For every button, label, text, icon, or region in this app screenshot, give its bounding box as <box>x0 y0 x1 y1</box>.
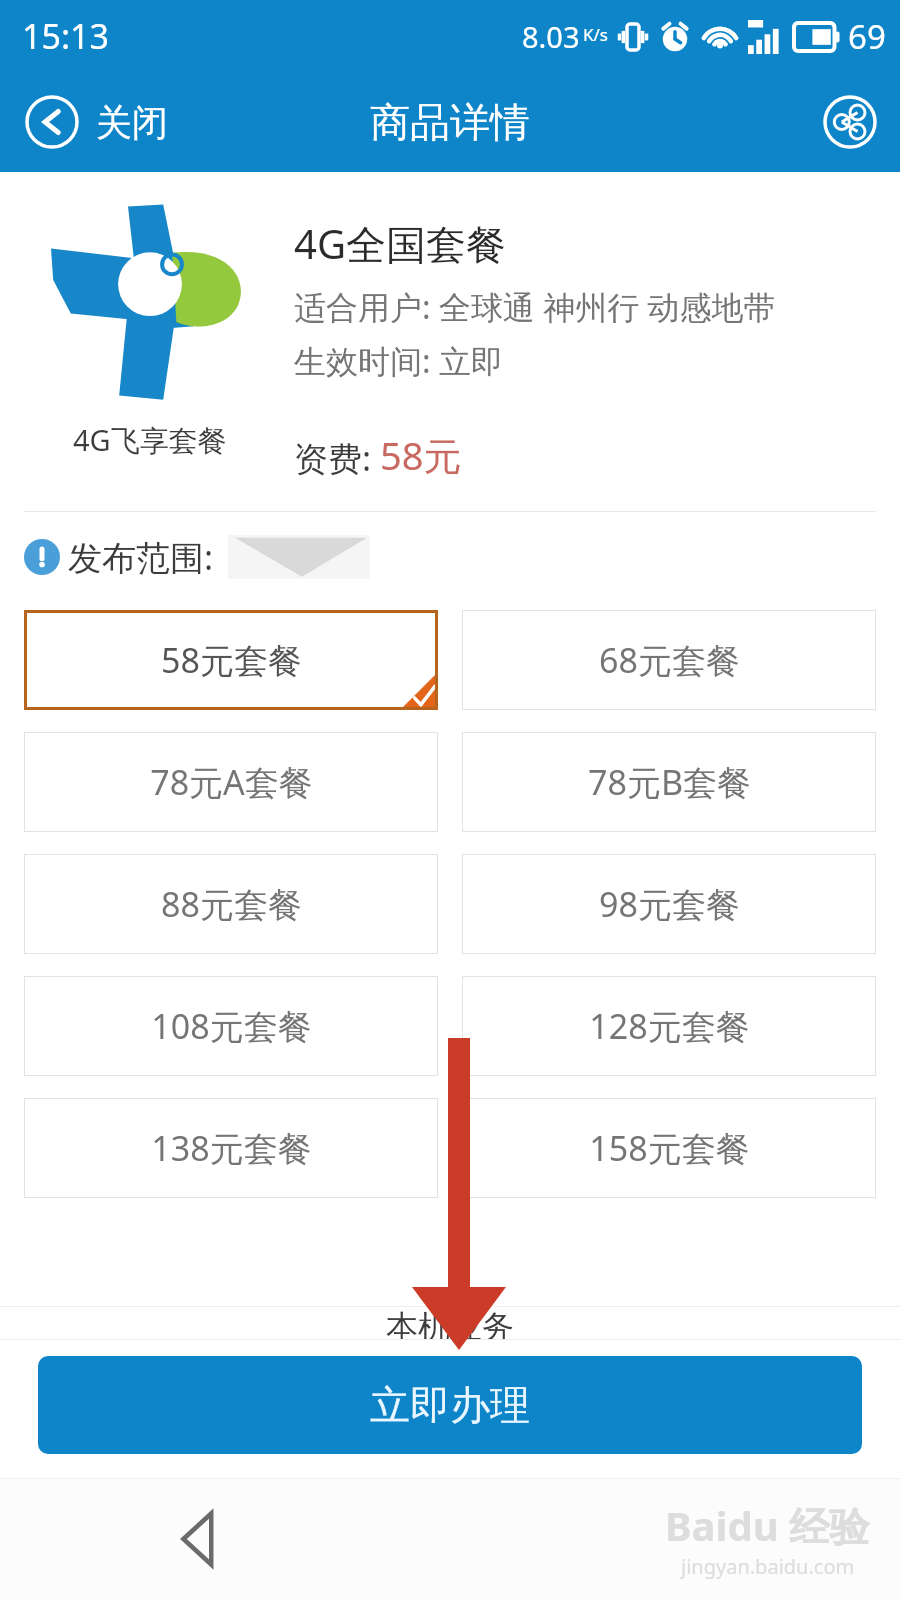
staticText: 15:13 <box>22 13 109 59</box>
button[interactable]: 68元套餐 <box>462 610 876 710</box>
staticText: 4G飞享套餐 <box>73 420 227 460</box>
staticText: 58元 <box>380 429 462 481</box>
staticText: 8.03 <box>522 17 580 56</box>
staticText: 98元套餐 <box>599 881 740 927</box>
button[interactable]: Share <box>822 94 878 150</box>
staticText: 资费: <box>294 435 380 481</box>
staticText: 69 <box>848 14 886 59</box>
staticText: 生效时间: 立即 <box>294 339 503 383</box>
button[interactable]: 58元套餐 <box>24 610 438 710</box>
staticText: 发布范围: <box>68 534 214 580</box>
staticText: 立即办理 <box>370 1380 530 1430</box>
button[interactable]: Back <box>18 90 174 154</box>
staticText: 78元B套餐 <box>588 759 751 805</box>
staticText: 关闭 <box>96 100 168 145</box>
staticText: 88元套餐 <box>161 881 302 927</box>
button[interactable]: 128元套餐 <box>462 976 876 1076</box>
button[interactable]: 立即办理 <box>38 1356 862 1454</box>
staticText: K/s <box>583 23 608 46</box>
button[interactable]: 78元B套餐 <box>462 732 876 832</box>
button[interactable]: 108元套餐 <box>24 976 438 1076</box>
other: Back <box>24 94 80 150</box>
staticText: 78元A套餐 <box>150 759 313 805</box>
button[interactable]: 158元套餐 <box>462 1098 876 1198</box>
button[interactable] <box>228 535 370 579</box>
button[interactable]: 88元套餐 <box>24 854 438 954</box>
button[interactable]: 98元套餐 <box>462 854 876 954</box>
button[interactable]: 78元A套餐 <box>24 732 438 832</box>
button[interactable]: Back <box>150 1494 240 1584</box>
staticText: 58元套餐 <box>161 637 302 683</box>
staticText: 68元套餐 <box>599 637 740 683</box>
staticText: 128元套餐 <box>589 1003 750 1049</box>
staticText: 本机业务 <box>386 1307 514 1339</box>
staticText: 138元套餐 <box>151 1125 312 1171</box>
staticText: 适合用户: 全球通 神州行 动感地带 <box>294 285 776 329</box>
staticText: 158元套餐 <box>589 1125 750 1171</box>
button[interactable]: 138元套餐 <box>24 1098 438 1198</box>
staticText: 4G全国套餐 <box>294 216 506 271</box>
staticText: Baidu 经验 <box>665 1498 870 1553</box>
staticText: 108元套餐 <box>151 1003 312 1049</box>
staticText: jingyan.baidu.com <box>681 1553 855 1580</box>
staticText: 商品详情 <box>370 97 530 147</box>
